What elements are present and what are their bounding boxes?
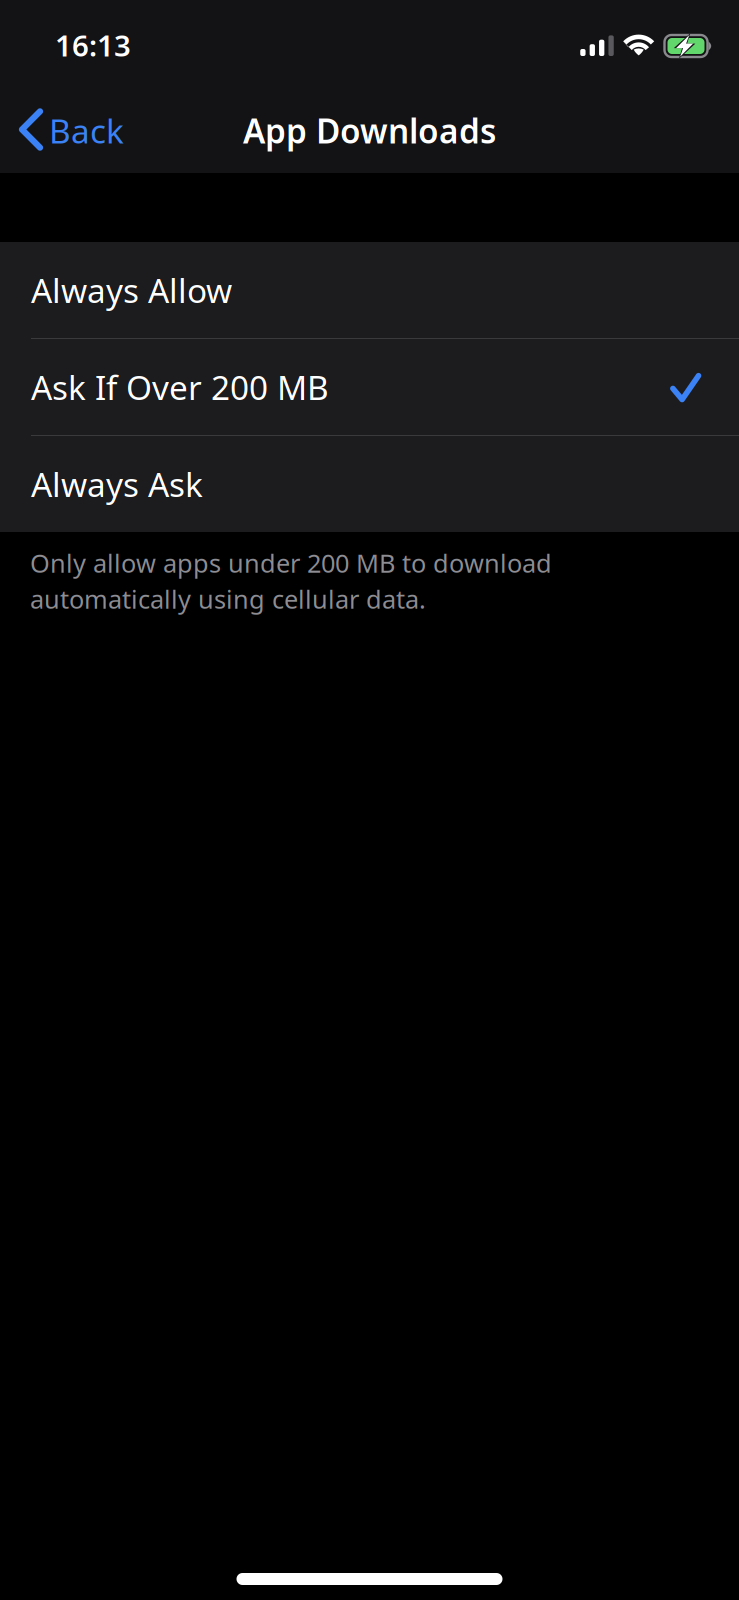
staticText: Always Allow: [31, 268, 232, 312]
staticText: Only allow apps under 200 MB to download…: [30, 546, 552, 616]
button[interactable]: Always Allow: [0, 242, 739, 338]
button[interactable]: Always Ask: [0, 436, 739, 532]
staticText: App Downloads: [243, 108, 496, 153]
staticText: Always Ask: [31, 462, 203, 506]
staticText: Back: [49, 108, 124, 153]
button[interactable]: Back: [0, 87, 146, 173]
button[interactable]: Ask If Over 200 MB: [0, 339, 739, 435]
staticText: Ask If Over 200 MB: [31, 365, 329, 409]
staticText: 16:13: [55, 25, 131, 64]
